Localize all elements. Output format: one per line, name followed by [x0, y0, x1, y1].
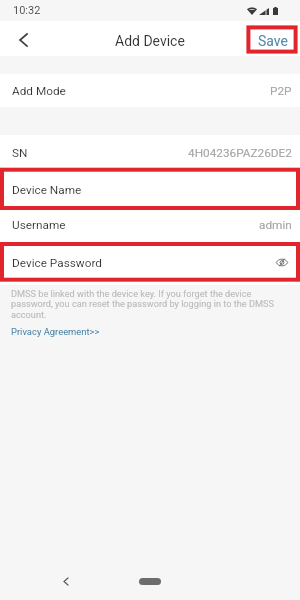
staticText: admin [259, 218, 292, 232]
staticText: Privacy Agreement>> [11, 326, 100, 337]
button[interactable]: Home [139, 578, 161, 585]
staticText: 10:32 [13, 4, 41, 17]
button[interactable]: Save [252, 29, 294, 53]
staticText: DMSS be linked with the device key. If y… [11, 288, 286, 321]
button[interactable]: Back [52, 567, 80, 595]
staticText: Save [258, 33, 288, 49]
button[interactable]: Username [0, 210, 300, 240]
staticText: 4H04236PAZ26DE2 [188, 146, 292, 160]
staticText: Add Mode [12, 84, 66, 98]
button[interactable]: Privacy Agreement>> [11, 326, 100, 337]
button[interactable]: Device Name [0, 170, 300, 210]
button[interactable]: Device Password [0, 240, 300, 285]
button[interactable]: Back [9, 26, 37, 54]
staticText: Add Device [115, 33, 185, 49]
button[interactable]: Add Mode [0, 74, 300, 107]
button[interactable]: Show password [276, 258, 288, 267]
button[interactable]: SN [0, 135, 300, 170]
staticText: Username [12, 218, 66, 232]
staticText: SN [12, 146, 28, 160]
staticText: Device Name [12, 183, 82, 197]
staticText: Device Password [12, 256, 102, 270]
staticText: P2P [270, 84, 292, 98]
